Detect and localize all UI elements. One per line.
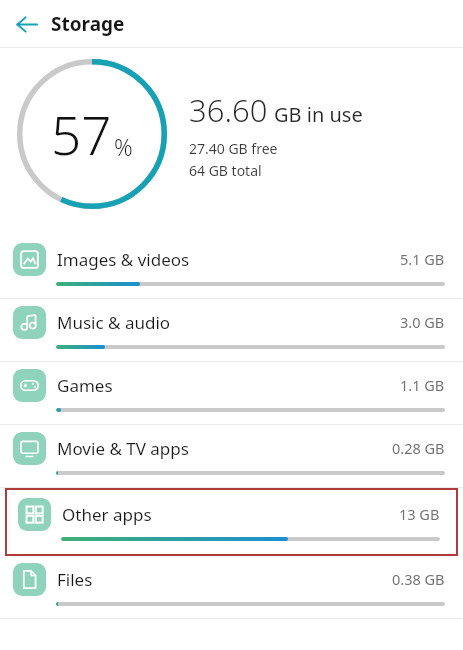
button[interactable]: Music & audio	[0, 299, 463, 362]
staticText: GB in use	[274, 101, 363, 128]
staticText: %	[114, 131, 133, 162]
button[interactable]: Back	[6, 4, 46, 44]
staticText: 27.40 GB free	[189, 139, 278, 158]
button[interactable]: Games	[0, 362, 463, 425]
staticText: 5.1 GB	[400, 249, 445, 269]
staticText: 3.0 GB	[400, 312, 445, 332]
staticText: Music & audio	[57, 311, 400, 334]
staticText: Games	[57, 374, 400, 397]
staticText: Files	[57, 568, 392, 591]
staticText: 64 GB total	[189, 161, 262, 180]
staticText: 1.1 GB	[400, 375, 445, 395]
button[interactable]: Movie & TV apps	[0, 425, 463, 488]
button[interactable]: Other apps	[5, 491, 458, 553]
staticText: 36.60	[189, 89, 268, 131]
staticText: Movie & TV apps	[57, 437, 392, 460]
button[interactable]: Files	[0, 556, 463, 619]
staticText: 57	[51, 98, 112, 170]
staticText: Images & videos	[57, 248, 400, 271]
staticText: 0.28 GB	[392, 438, 445, 458]
staticText: 0.38 GB	[392, 569, 445, 589]
button[interactable]: Images & videos	[0, 236, 463, 299]
staticText: Other apps	[62, 503, 399, 526]
staticText: 13 GB	[399, 504, 440, 524]
staticText: Storage	[51, 11, 125, 37]
